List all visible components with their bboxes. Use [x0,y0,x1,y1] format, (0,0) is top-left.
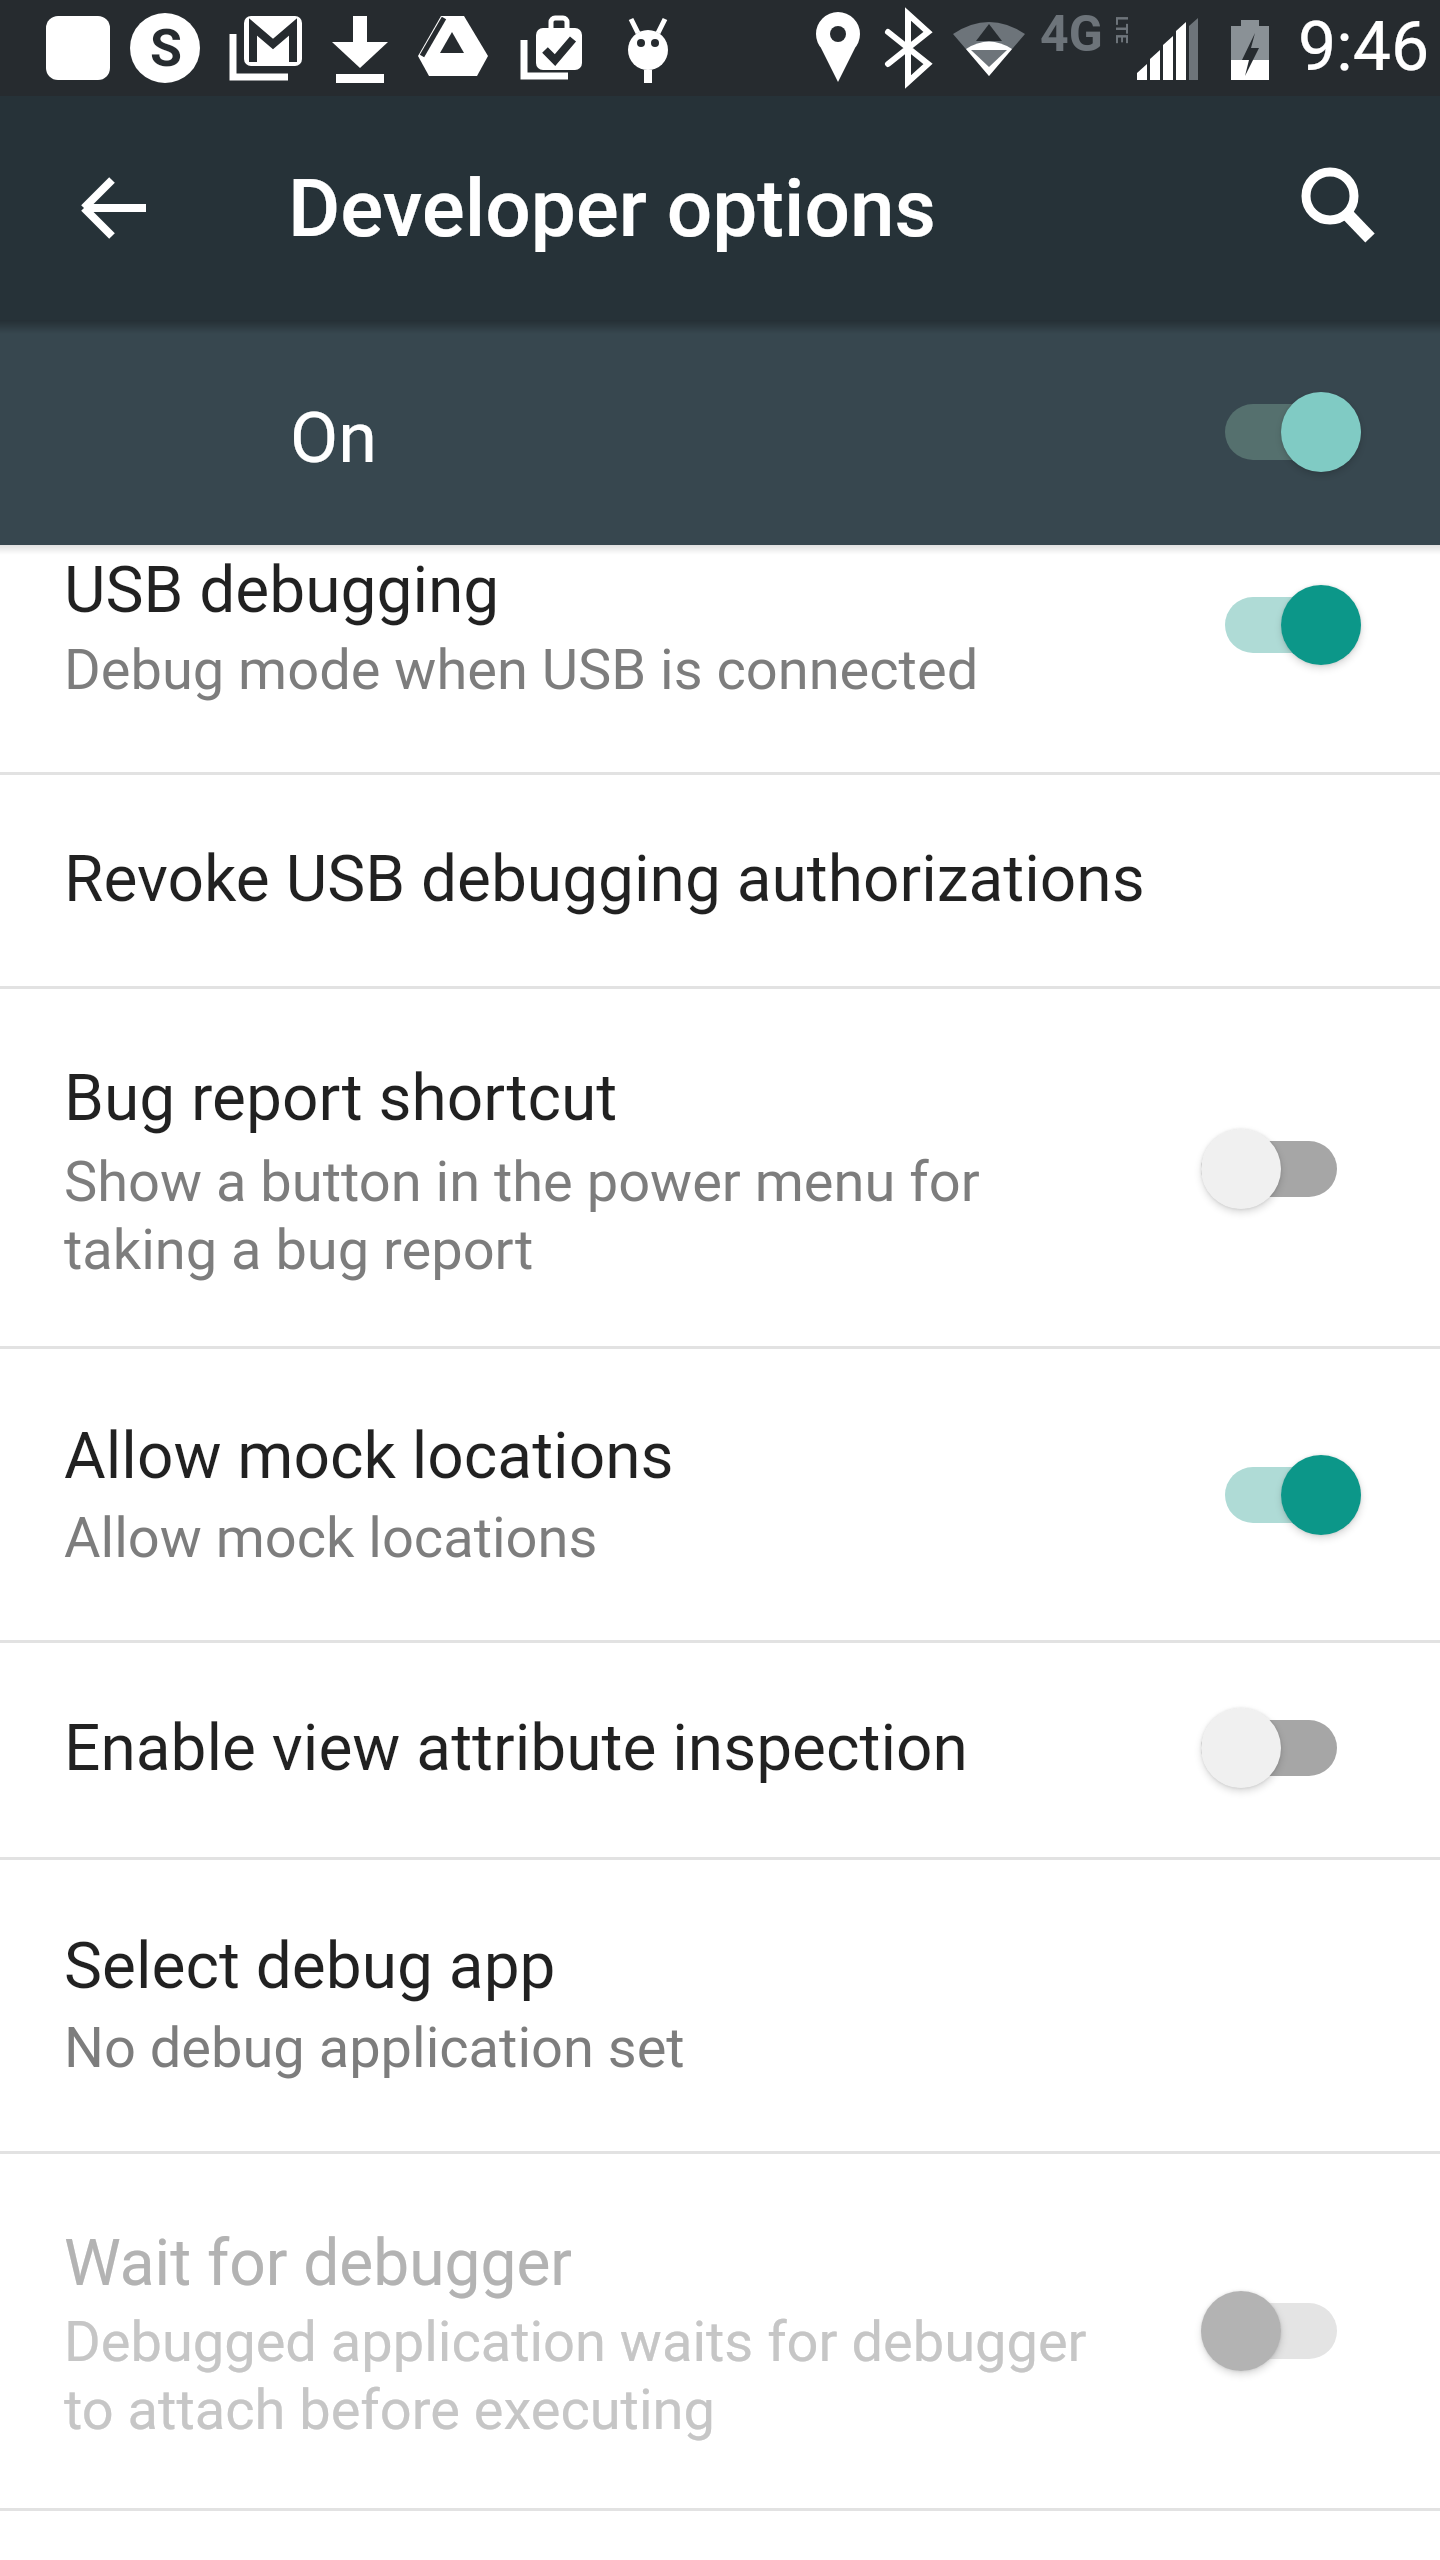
staticText: Developer options [288,162,936,256]
staticText: Bug report shortcut [64,1061,618,1136]
button[interactable] [1280,152,1392,264]
staticText: Wait for debugger [64,2226,572,2301]
button[interactable]: USB debugging [0,545,1440,772]
staticText: Enable view attribute inspection [64,1711,968,1786]
staticText: Debug mode when USB is connected [64,637,979,703]
button[interactable]: On [0,320,1440,545]
button[interactable]: Revoke USB debugging authorizations [0,775,1440,986]
staticText: Allow mock locations [64,1419,674,1494]
staticText: 9:46 [1298,7,1430,87]
staticText: LTE [1112,16,1132,44]
button[interactable]: Enable view attribute inspection [0,1643,1440,1857]
staticText: Revoke USB debugging authorizations [64,842,1145,917]
staticText: Debugged application waits for debugger [64,2309,1087,2375]
staticText: S [150,18,182,79]
button[interactable]: Select debug app [0,1857,1440,2151]
staticText: taking a bug report [64,1217,534,1283]
button[interactable] [60,152,172,264]
staticText: On [290,397,377,479]
staticText: Select debug app [64,1929,556,2004]
button[interactable]: Allow mock locations [0,1349,1440,1640]
button[interactable]: Bug report shortcut [0,989,1440,1346]
staticText: 4G [1040,5,1103,64]
staticText: USB debugging [64,553,500,628]
staticText: No debug application set [64,2015,685,2081]
staticText: to attach before executing [64,2377,715,2443]
button[interactable]: Wait for debugger [0,2151,1440,2508]
staticText: Allow mock locations [64,1505,598,1571]
staticText: Show a button in the power menu for [64,1149,980,1215]
